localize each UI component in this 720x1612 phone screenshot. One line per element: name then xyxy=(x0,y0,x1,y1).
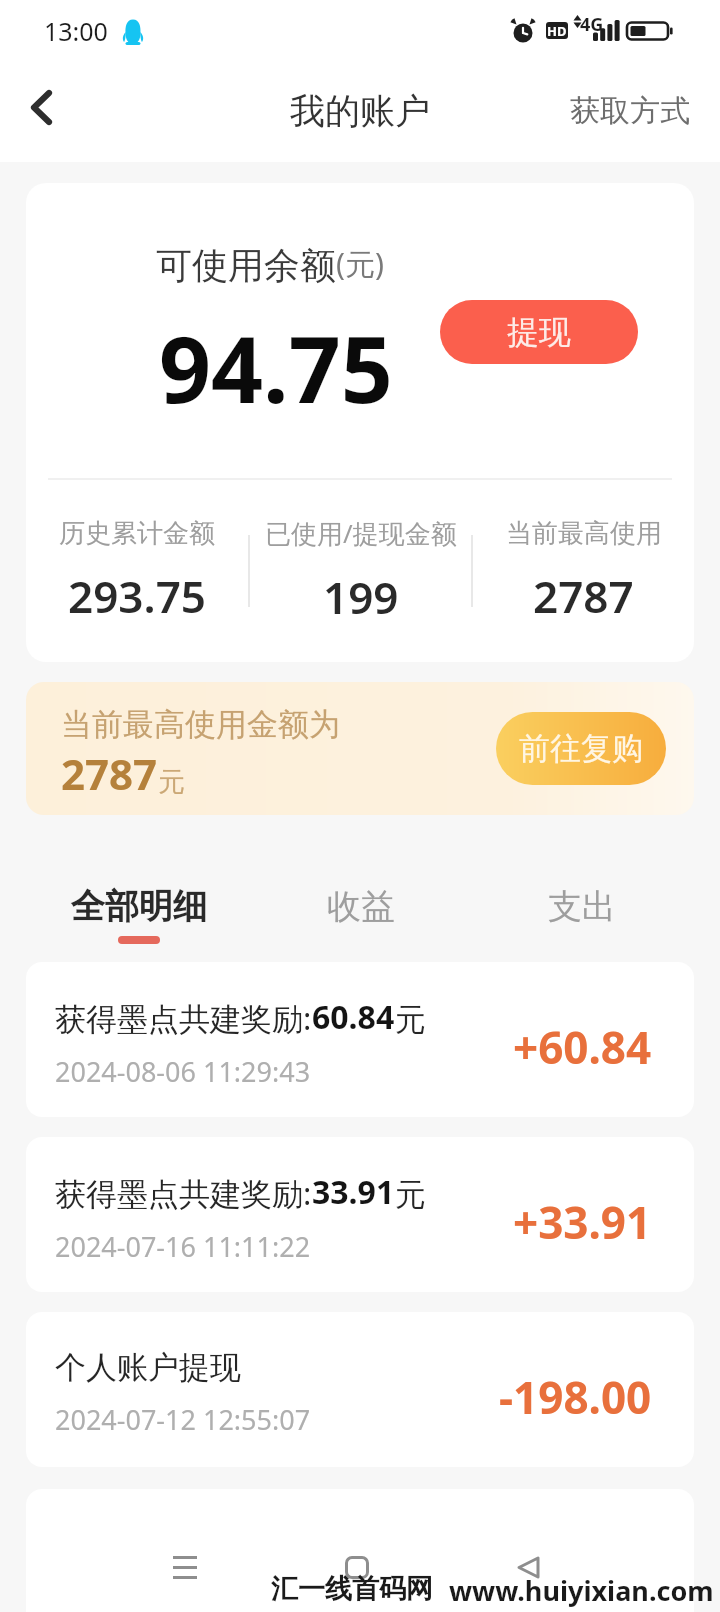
staticText: 获得墨点共建奖励: xyxy=(55,997,312,1039)
staticText: 当前最高使用金额为 xyxy=(61,705,340,744)
button[interactable]: Back xyxy=(7,73,75,141)
staticText: 元 xyxy=(395,1000,426,1039)
staticText: 历史累计金额 xyxy=(59,517,215,550)
staticText: 94.75 xyxy=(159,306,393,430)
staticText: 收益 xyxy=(327,885,395,928)
staticText: 60.84 xyxy=(312,995,395,1039)
button[interactable]: 提现 xyxy=(440,300,638,364)
staticText: 33.91 xyxy=(312,1170,395,1214)
button[interactable] xyxy=(26,1489,694,1612)
staticText: 已使用/提现金额 xyxy=(265,515,457,551)
staticText: 汇一线首码网 xyxy=(271,1572,433,1606)
staticText: (元) xyxy=(336,243,384,284)
staticText: 2024-08-06 11:29:43 xyxy=(55,1053,311,1090)
staticText: 元 xyxy=(158,765,185,799)
staticText: 个人账户提现 xyxy=(55,1348,241,1387)
button[interactable]: Back xyxy=(496,1535,560,1599)
staticText: www.huiyixian.com xyxy=(449,1572,714,1609)
button[interactable]: 个人账户提现 xyxy=(26,1312,694,1467)
button[interactable]: 全部明细 xyxy=(0,881,278,948)
staticText: 全部明细 xyxy=(71,885,207,928)
button[interactable]: 获得墨点共建奖励: xyxy=(26,962,694,1117)
staticText: 293.75 xyxy=(68,566,206,626)
staticText: 获取方式 xyxy=(570,92,690,130)
staticText: -198.00 xyxy=(499,1367,652,1427)
staticText: 获得墨点共建奖励: xyxy=(55,1172,312,1214)
button[interactable]: 获得墨点共建奖励: xyxy=(26,1137,694,1292)
staticText: 可使用余额 xyxy=(156,243,336,288)
staticText: +60.84 xyxy=(513,1017,652,1077)
staticText: 2024-07-16 11:11:22 xyxy=(55,1228,311,1265)
button[interactable]: Recent apps xyxy=(153,1535,217,1599)
staticText: 2787 xyxy=(61,745,158,802)
button[interactable]: Home xyxy=(325,1535,389,1599)
button[interactable]: 获取方式 xyxy=(540,78,720,144)
staticText: 4G xyxy=(580,12,604,37)
button[interactable]: 收益 xyxy=(278,881,444,940)
button[interactable]: 前往复购 xyxy=(496,712,666,785)
staticText: 当前最高使用 xyxy=(506,517,662,550)
staticText: HD xyxy=(547,22,567,39)
staticText: 元 xyxy=(395,1175,426,1214)
staticText: 2024-07-12 12:55:07 xyxy=(55,1401,311,1438)
button[interactable]: 支出 xyxy=(444,881,720,940)
staticText: 提现 xyxy=(507,312,571,352)
staticText: 2787 xyxy=(533,566,634,626)
staticText: 前往复购 xyxy=(519,729,643,768)
staticText: +33.91 xyxy=(513,1192,652,1252)
staticText: 199 xyxy=(323,567,399,627)
staticText: 我的账户 xyxy=(290,89,430,133)
staticText: 支出 xyxy=(548,885,616,928)
staticText: 13:00 xyxy=(44,14,108,48)
